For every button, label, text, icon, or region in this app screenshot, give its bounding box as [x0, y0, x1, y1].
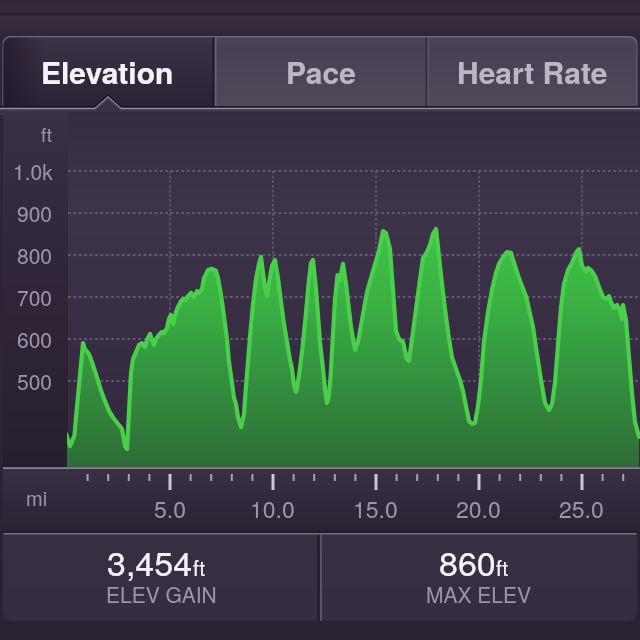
staticText: 600	[17, 324, 53, 354]
staticText: 5.0	[154, 492, 186, 525]
staticText: ft	[193, 552, 206, 582]
button[interactable]: Elevation	[2, 36, 213, 107]
staticText: 800	[17, 240, 53, 270]
staticText: 15.0	[353, 492, 398, 525]
staticText: Heart Rate	[457, 50, 608, 93]
staticText: 3,454	[107, 537, 193, 583]
staticText: 25.0	[559, 492, 604, 525]
staticText: 1.0k	[13, 156, 53, 186]
staticText: ft	[496, 552, 509, 582]
staticText: 900	[17, 198, 53, 228]
button[interactable]: Heart Rate	[428, 36, 637, 107]
staticText: ELEV GAIN	[106, 579, 217, 609]
staticText: mi	[26, 483, 48, 512]
staticText: 700	[17, 282, 53, 312]
staticText: 20.0	[456, 492, 501, 525]
staticText: Elevation	[41, 50, 174, 93]
staticText: MAX ELEV	[426, 579, 532, 609]
button[interactable]: 860	[321, 533, 637, 621]
staticText: 10.0	[250, 492, 295, 525]
staticText: 500	[17, 366, 53, 396]
button[interactable]: Pace	[215, 36, 426, 107]
staticText: Pace	[286, 50, 356, 93]
button[interactable]: 3,454	[3, 533, 320, 621]
staticText: 860	[439, 537, 496, 583]
staticText: ft	[41, 120, 53, 147]
